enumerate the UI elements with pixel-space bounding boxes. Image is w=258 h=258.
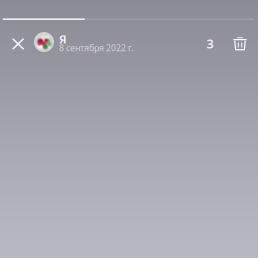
button[interactable]: Close bbox=[5, 30, 31, 56]
button[interactable]: Viewers, 3 bbox=[199, 30, 221, 56]
staticText: 3 bbox=[206, 35, 213, 52]
staticText: 8 сентября 2022 г. bbox=[59, 42, 133, 54]
button[interactable]: Delete bbox=[229, 31, 251, 57]
button[interactable]: Я bbox=[34, 31, 144, 53]
staticText: Я bbox=[59, 31, 67, 47]
